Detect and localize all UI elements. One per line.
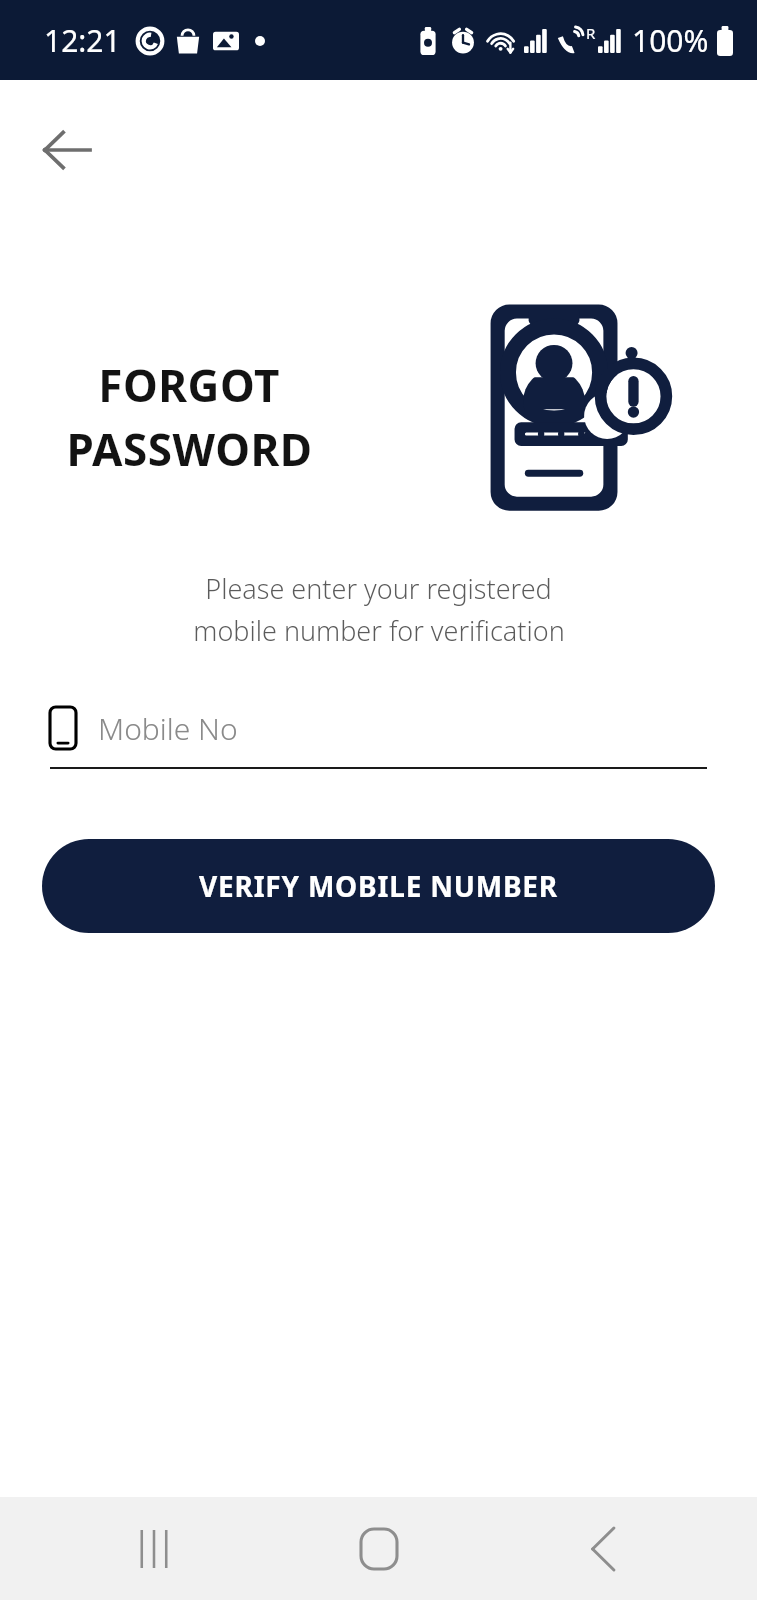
staticText: Mobile No bbox=[98, 708, 238, 749]
button[interactable]: Mobile No bbox=[50, 707, 707, 769]
button[interactable]: Back bbox=[26, 110, 106, 190]
button[interactable]: Recent apps bbox=[84, 1497, 224, 1600]
staticText: 100% bbox=[632, 20, 709, 61]
staticText: Please enter your registered bbox=[205, 570, 552, 607]
staticText: FORGOT bbox=[98, 355, 280, 415]
staticText: R bbox=[586, 23, 596, 43]
staticText: mobile number for verification bbox=[193, 612, 565, 649]
button[interactable]: Home bbox=[309, 1497, 449, 1600]
staticText: PASSWORD bbox=[66, 419, 313, 479]
staticText: VERIFY MOBILE NUMBER bbox=[199, 867, 559, 905]
staticText: 12:21 bbox=[44, 20, 121, 61]
button[interactable]: VERIFY MOBILE NUMBER bbox=[42, 839, 715, 933]
button[interactable]: Back bbox=[533, 1497, 673, 1600]
